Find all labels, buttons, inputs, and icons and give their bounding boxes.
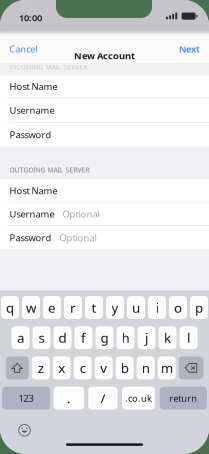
staticText: OUTGOING MAIL SERVER <box>10 165 90 174</box>
staticText: u <box>132 299 140 316</box>
staticText: Optional <box>62 208 99 220</box>
button[interactable]: q <box>1 296 19 319</box>
staticText: Next <box>179 43 200 55</box>
staticText: r <box>70 299 76 316</box>
staticText: x <box>58 359 65 377</box>
button[interactable]: h <box>116 326 134 349</box>
button[interactable]: r <box>64 296 82 319</box>
staticText: j <box>145 329 148 346</box>
staticText: .co.uk <box>125 392 152 404</box>
button[interactable]: g <box>95 326 113 349</box>
staticText: New Account <box>74 49 135 62</box>
staticText: q <box>6 299 14 316</box>
staticText: 123 <box>19 392 34 404</box>
button[interactable]: z <box>32 356 50 379</box>
button[interactable]: m <box>158 356 176 379</box>
button[interactable]: Shift <box>6 356 29 379</box>
button[interactable]: p <box>190 296 208 319</box>
button[interactable]: Next <box>149 45 200 52</box>
staticText: c <box>80 359 86 377</box>
staticText: g <box>100 329 108 346</box>
staticText: Host Name <box>9 80 57 93</box>
button[interactable]: / <box>88 387 117 410</box>
staticText: m <box>161 359 173 377</box>
button[interactable]: b <box>116 356 134 379</box>
button[interactable]: l <box>179 326 197 349</box>
button[interactable]: Username <box>0 98 209 122</box>
staticText: k <box>164 329 171 346</box>
staticText: . <box>67 389 71 407</box>
staticText: h <box>121 329 129 346</box>
staticText: / <box>100 389 105 407</box>
button[interactable]: v <box>95 356 113 379</box>
staticText: z <box>38 359 44 377</box>
button[interactable]: s <box>32 326 50 349</box>
staticText: f <box>81 329 86 346</box>
staticText: Optional <box>59 231 96 244</box>
button[interactable]: Emoji keyboard <box>18 424 31 437</box>
button[interactable]: f <box>74 326 92 349</box>
staticText: Password <box>9 231 51 244</box>
staticText: 10:00 <box>19 11 42 24</box>
staticText: v <box>100 359 107 377</box>
button[interactable]: j <box>137 326 155 349</box>
staticText: Host Name <box>9 184 57 197</box>
staticText: d <box>58 329 66 346</box>
staticText: i <box>155 299 158 316</box>
staticText: Password <box>9 128 51 141</box>
button[interactable]: 123 <box>2 387 50 410</box>
staticText: t <box>91 299 96 316</box>
button[interactable]: Host Name <box>0 76 209 97</box>
button[interactable]: Username <box>0 203 209 225</box>
button[interactable]: Password <box>0 123 209 146</box>
staticText: l <box>187 329 190 346</box>
button[interactable]: Cancel <box>9 45 69 52</box>
button[interactable]: return <box>160 387 207 410</box>
button[interactable]: k <box>158 326 176 349</box>
button[interactable]: Delete <box>179 356 203 379</box>
staticText: s <box>38 329 44 346</box>
staticText: INCOMING MAIL SERVER <box>10 63 88 71</box>
staticText: a <box>17 329 24 346</box>
button[interactable]: a <box>11 326 29 349</box>
button[interactable]: Password <box>0 226 209 249</box>
button[interactable]: .co.uk <box>122 387 155 410</box>
button[interactable]: o <box>169 296 187 319</box>
staticText: Username <box>9 104 54 116</box>
button[interactable]: x <box>53 356 71 379</box>
staticText: Cancel <box>9 43 37 55</box>
staticText: b <box>121 359 129 377</box>
button[interactable]: e <box>43 296 61 319</box>
staticText: Username <box>9 208 54 220</box>
staticText: w <box>26 299 36 316</box>
button[interactable]: . <box>54 387 84 410</box>
button[interactable]: w <box>22 296 40 319</box>
staticText: return <box>169 392 197 404</box>
button[interactable]: u <box>127 296 145 319</box>
button[interactable]: t <box>85 296 103 319</box>
button[interactable]: i <box>148 296 166 319</box>
staticText: n <box>142 359 150 377</box>
staticText: p <box>195 299 203 316</box>
button[interactable]: y <box>106 296 124 319</box>
staticText: e <box>48 299 56 316</box>
staticText: y <box>111 299 118 316</box>
button[interactable]: Host Name <box>0 179 209 202</box>
staticText: o <box>174 299 182 316</box>
button[interactable]: d <box>53 326 71 349</box>
button[interactable]: c <box>74 356 92 379</box>
button[interactable]: n <box>137 356 155 379</box>
